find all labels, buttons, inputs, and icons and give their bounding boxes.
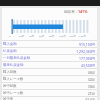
staticText: 100万 xyxy=(59,34,66,37)
button[interactable]: 的中回数 xyxy=(2,83,97,89)
button[interactable]: 購入金額 xyxy=(2,41,97,47)
staticText: 的中率 xyxy=(3,97,85,100)
staticText: 払戻金額 xyxy=(3,49,76,53)
staticText: 1,292,360円 xyxy=(76,49,95,54)
staticText: 32回 xyxy=(87,77,95,82)
staticText: 43,500円 xyxy=(81,63,95,68)
staticText: 141% xyxy=(78,9,88,14)
button[interactable]: 的中率 xyxy=(2,97,97,100)
staticText: 回収率 : xyxy=(64,9,78,14)
staticText: 購入回数 xyxy=(3,70,87,74)
button[interactable]: 回収率 : xyxy=(64,9,88,14)
staticText: 915,100円 xyxy=(79,42,95,47)
staticText: 購入レース数 xyxy=(3,77,87,81)
staticText: 最高払戻金額 xyxy=(3,63,81,67)
staticText: 60万 xyxy=(39,34,45,37)
button[interactable]: 的中レース数 xyxy=(2,90,97,96)
staticText: 140万 xyxy=(79,34,86,37)
staticText: 30回 xyxy=(87,84,95,89)
staticText: 購入金額 xyxy=(3,42,79,46)
staticText: 177,000円 xyxy=(79,56,95,61)
staticText: 一日最高払戻金額 xyxy=(3,56,79,60)
staticText: 80万 xyxy=(49,34,55,37)
staticText: 40万 xyxy=(29,34,35,37)
staticText: 46回 xyxy=(87,70,95,75)
button[interactable]: 最高払戻金額 xyxy=(2,62,97,68)
button[interactable]: 購入回数 xyxy=(2,69,97,75)
button[interactable]: 払戻金額 xyxy=(2,48,97,54)
staticText: 120万 xyxy=(69,34,76,37)
staticText: 20万 xyxy=(19,34,25,37)
staticText: 0 xyxy=(9,34,11,37)
staticText: 65.6% xyxy=(85,97,95,100)
button[interactable]: 一日最高払戻金額 xyxy=(2,55,97,61)
staticText: 的中レース数 xyxy=(3,91,87,95)
staticText: 21回 xyxy=(87,91,95,96)
staticText: 的中回数 xyxy=(3,84,87,88)
button[interactable]: 購入レース数 xyxy=(2,76,97,82)
